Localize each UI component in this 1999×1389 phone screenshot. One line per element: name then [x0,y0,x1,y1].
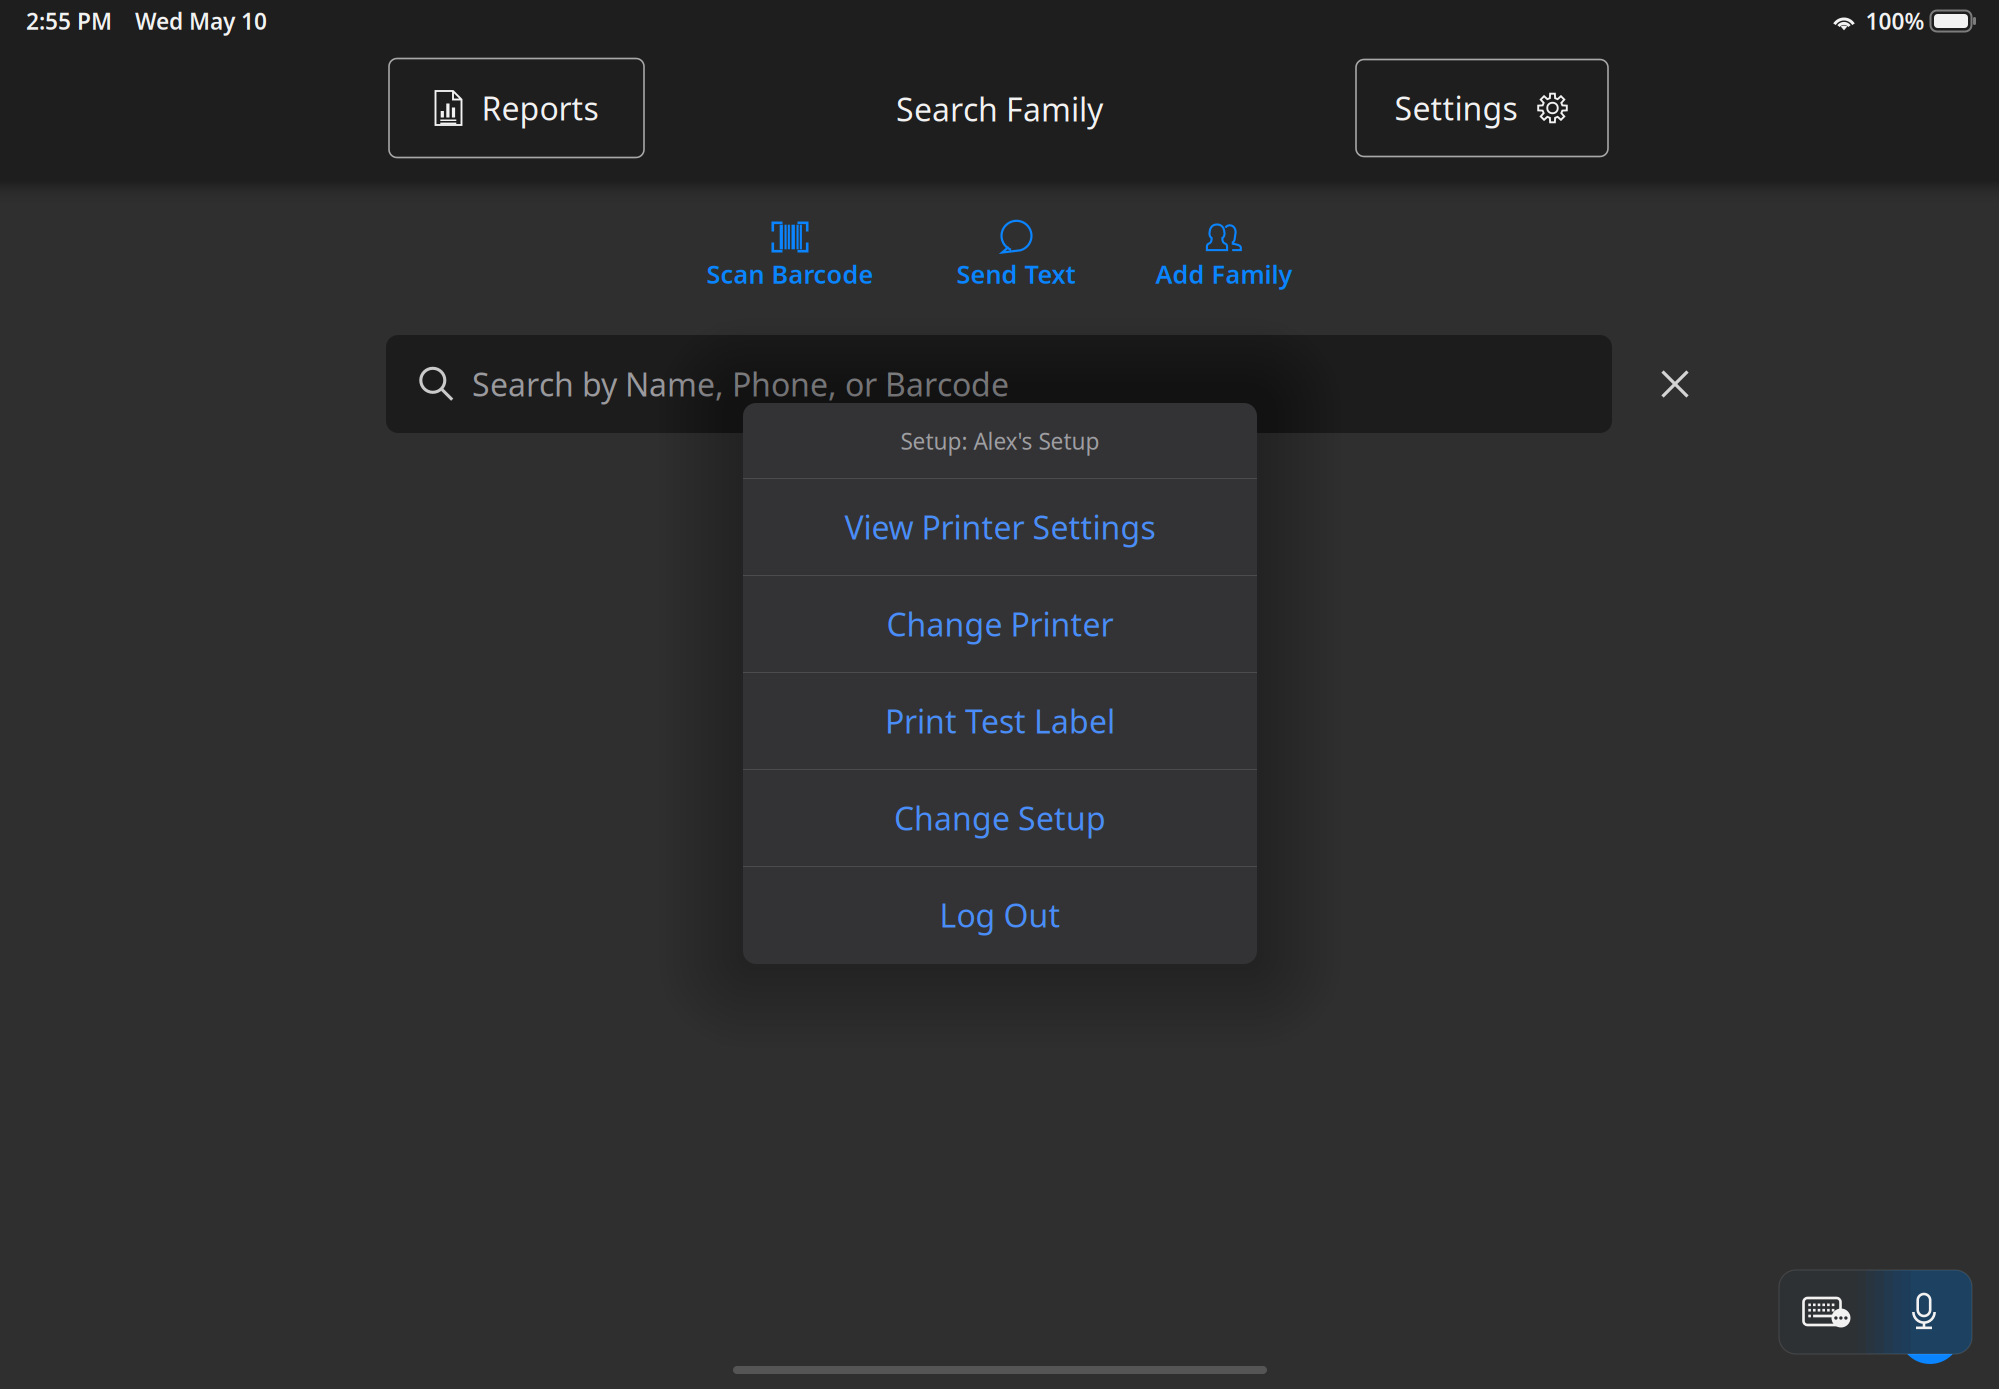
staticText: 2:55 PM [26,6,112,36]
staticText: Change Printer [886,603,1113,645]
staticText: Search by Name, Phone, or Barcode [472,363,1009,405]
staticText: 100% [1865,6,1924,36]
button[interactable]: Send Text [914,220,1118,294]
staticText: Search Family [896,88,1103,130]
staticText: Change Setup [894,797,1106,839]
staticText: Print Test Label [885,700,1115,742]
staticText: Settings [1394,87,1517,129]
button[interactable]: Change Setup [743,770,1257,866]
button[interactable]: Scan Barcode [677,220,903,294]
staticText: View Printer Settings [844,506,1155,548]
button[interactable]: View Printer Settings [743,479,1257,575]
button[interactable]: Settings [1356,59,1608,156]
staticText: Add Family [1155,257,1292,291]
button[interactable]: Reports [389,58,644,157]
staticText: Setup: Alex's Setup [900,426,1099,456]
staticText: Scan Barcode [706,257,873,291]
button[interactable]: Dictate [1876,1270,1972,1354]
button[interactable]: Log Out [743,867,1257,963]
button[interactable]: Change Printer [743,576,1257,672]
button[interactable]: Print Test Label [743,673,1257,769]
staticText: Wed May 10 [135,6,267,36]
button[interactable]: Clear search [1612,335,1738,433]
staticText: Reports [481,87,598,129]
button[interactable]: Add Family [1122,220,1326,294]
staticText: Send Text [956,257,1075,291]
staticText: Log Out [939,894,1060,936]
button[interactable]: Show keyboard [1779,1270,1876,1354]
